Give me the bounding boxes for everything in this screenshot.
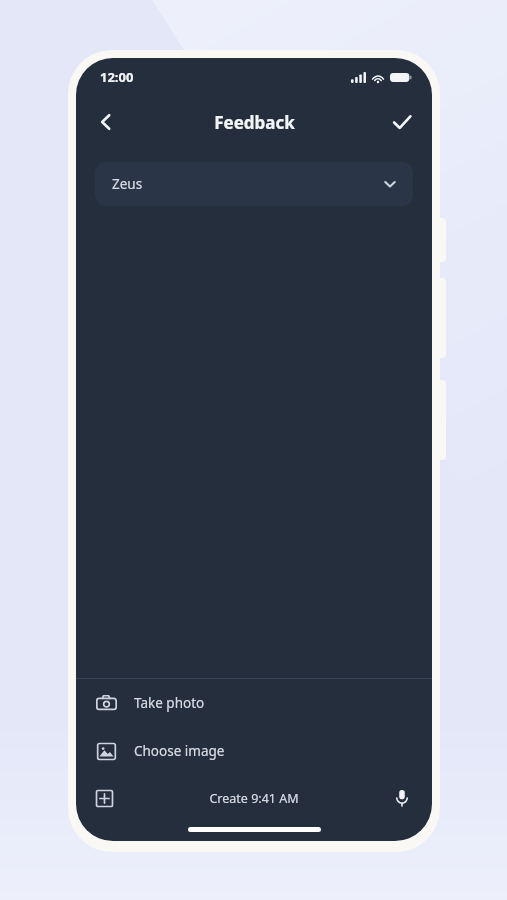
button[interactable]: Add — [84, 778, 124, 818]
staticText: Zeus — [112, 175, 143, 193]
staticText: Feedback — [214, 111, 295, 134]
button[interactable]: Take photo — [76, 679, 432, 727]
staticText: Choose image — [134, 742, 225, 760]
staticText: 12:00 — [100, 68, 134, 86]
button[interactable]: Choose image — [76, 727, 432, 775]
button[interactable]: Confirm — [380, 100, 424, 144]
staticText: Take photo — [134, 694, 205, 712]
button[interactable]: Back — [84, 100, 128, 144]
staticText: Create 9:41 AM — [209, 790, 299, 807]
button[interactable]: Zeus — [95, 162, 413, 206]
button[interactable]: Voice input — [382, 778, 422, 818]
